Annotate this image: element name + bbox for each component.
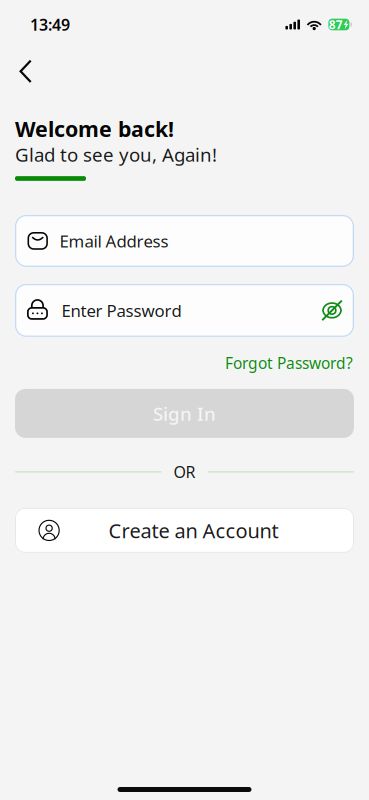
button[interactable]: Back xyxy=(0,59,369,83)
staticText: Email Address xyxy=(59,230,168,252)
staticText: Sign In xyxy=(153,401,216,426)
button[interactable]: Sign In xyxy=(15,389,354,438)
button[interactable]: Show password xyxy=(320,295,342,325)
staticText: Create an Account xyxy=(108,517,278,544)
staticText: Glad to see you, Again! xyxy=(15,142,217,167)
staticText: 13:49 xyxy=(30,14,70,35)
staticText: OR xyxy=(173,461,195,482)
staticText: Welcome back! xyxy=(15,114,174,143)
button[interactable]: Email Address xyxy=(15,215,354,267)
staticText: 87 xyxy=(329,16,343,32)
button[interactable]: Create an Account xyxy=(15,508,354,553)
button[interactable]: Forgot Password? xyxy=(225,354,353,372)
staticText: Enter Password xyxy=(61,299,181,321)
staticText: Forgot Password? xyxy=(225,353,353,373)
